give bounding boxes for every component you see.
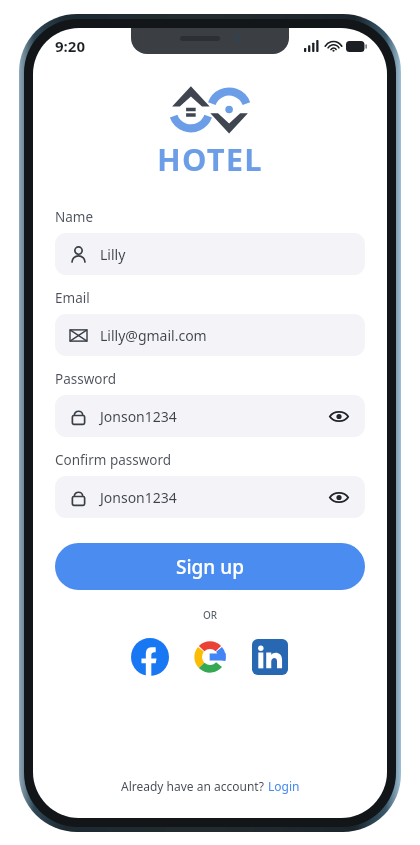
button[interactable]: Show password <box>328 405 350 427</box>
button[interactable]: Show password <box>328 486 350 508</box>
button[interactable]: Sign up with LinkedIn <box>249 636 291 678</box>
button[interactable]: Sign up with Google <box>189 636 231 678</box>
staticText: Lilly@gmail.com <box>100 326 207 345</box>
button[interactable]: Lilly@gmail.com <box>55 314 365 356</box>
staticText: Sign up <box>176 554 244 580</box>
staticText: Email <box>55 289 90 307</box>
button[interactable]: Jonson1234 <box>55 476 365 518</box>
button[interactable]: Lilly <box>55 233 365 275</box>
staticText: OR <box>55 608 365 622</box>
button[interactable]: Jonson1234 <box>55 395 365 437</box>
staticText: Name <box>55 208 94 226</box>
staticText: Already have an account? <box>121 778 268 794</box>
staticText: HOTEL <box>157 138 263 180</box>
staticText: 9:20 <box>55 36 85 56</box>
button[interactable]: Sign up <box>55 543 365 590</box>
button[interactable]: Sign up with Facebook <box>129 636 171 678</box>
staticText: Password <box>55 370 117 388</box>
staticText: Lilly <box>100 245 126 264</box>
button[interactable]: Login <box>268 778 300 794</box>
staticText: Jonson1234 <box>100 488 177 507</box>
staticText: Jonson1234 <box>100 407 177 426</box>
staticText: Confirm password <box>55 451 172 469</box>
staticText: Login <box>268 778 300 794</box>
